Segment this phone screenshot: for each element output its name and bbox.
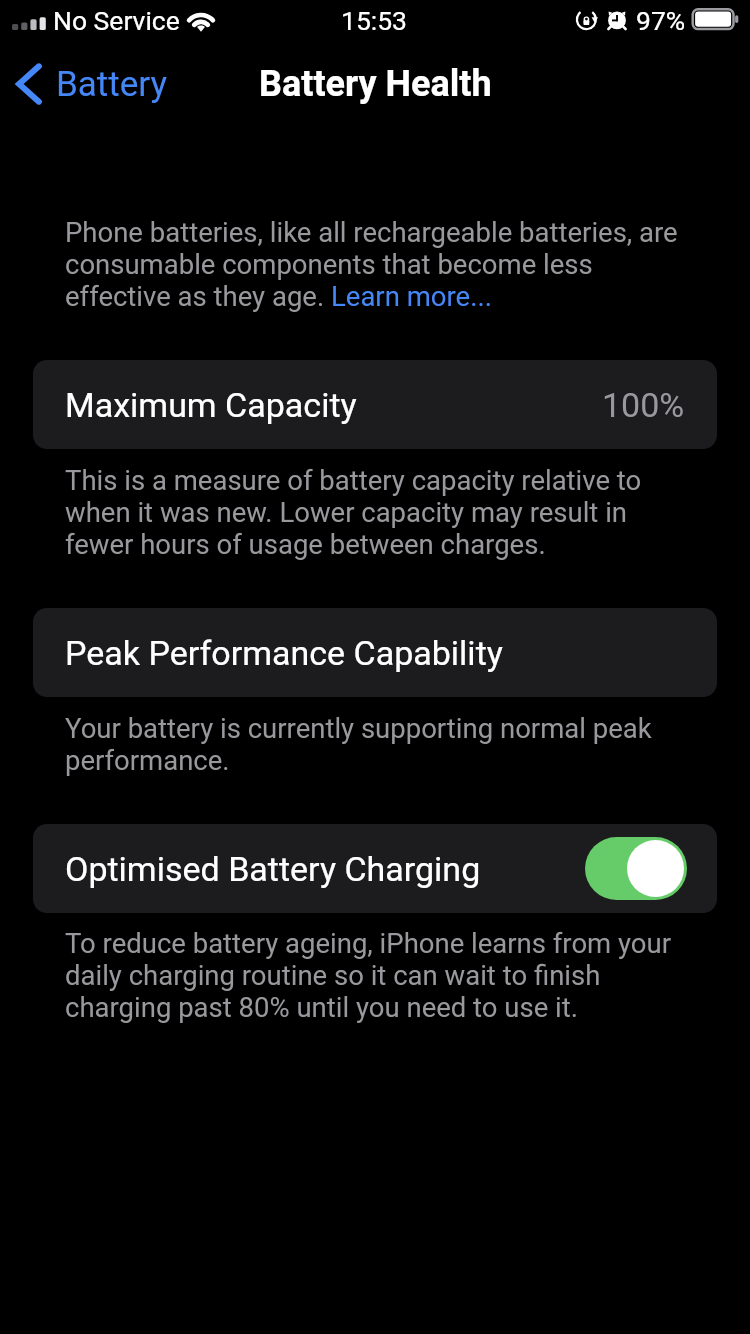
other: Cellular signal strength [12,16,48,32]
staticText: Your battery is currently supporting nor… [65,713,702,777]
other: Battery 97 percent [690,7,742,33]
staticText: This is a measure of battery capacity re… [65,465,702,561]
other: Wi-Fi connected [184,6,218,34]
staticText: No Service [53,5,180,36]
button[interactable]: Maximum Capacity [33,360,717,449]
staticText: Peak Performance Capability [65,633,503,673]
staticText: 97% [636,5,686,36]
staticText: Optimised Battery Charging [65,849,481,889]
button[interactable]: Learn more... [302,297,492,327]
staticText: 100% [602,385,685,425]
button[interactable]: Optimised Battery Charging [33,824,717,913]
staticText: To reduce battery ageing, iPhone learns … [65,928,702,1024]
button[interactable]: Optimised Battery Charging toggle [585,837,687,900]
button[interactable]: Peak Performance Capability [33,608,717,697]
staticText: Battery [56,64,168,105]
staticText: 15:53 [341,5,407,36]
other: Alarm set [605,7,629,31]
other: Rotation lock on [574,7,600,33]
button[interactable]: Battery [0,57,182,111]
staticText: Battery Health [259,63,492,105]
staticText: Phone batteries, like all rechargeable b… [65,217,702,313]
staticText: Maximum Capacity [65,385,357,425]
